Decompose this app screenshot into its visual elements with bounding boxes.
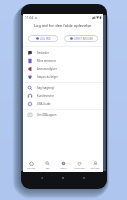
button[interactable]: DBA Guide [23, 100, 103, 108]
staticText: Beskeder [37, 51, 49, 55]
button[interactable]: Søg [39, 159, 55, 172]
button[interactable]: Beskeder [23, 49, 103, 57]
staticText: Log ind for den fulde oplevelse [34, 23, 92, 28]
staticText: DBA Guide [37, 102, 51, 106]
button[interactable]: Favoritter [71, 159, 87, 172]
button[interactable]: OPRET BRUGER [64, 35, 98, 42]
button[interactable]: Min side [87, 159, 103, 172]
button[interactable]: Swipes du følger [23, 73, 103, 81]
button[interactable]: Forside [23, 159, 39, 172]
button[interactable]: Mine annoncer [23, 57, 103, 65]
staticText: Favoritter [74, 167, 85, 170]
staticText: Swipes du følger [37, 75, 58, 79]
staticText: Annonceafgiver [37, 67, 57, 71]
button[interactable]: LOG IND [28, 35, 58, 42]
staticText: Om DBA appen [37, 113, 57, 117]
staticText: Søg (søgning) [37, 86, 55, 90]
button[interactable]: Annonceafgiver [23, 65, 103, 73]
button[interactable]: Kundeservice [23, 92, 103, 100]
button[interactable]: Om DBA appen [23, 111, 103, 119]
button[interactable]: Opret [55, 159, 71, 172]
button[interactable]: Søg (søgning) [23, 84, 103, 92]
staticText: LOG IND [40, 37, 51, 41]
staticText: Opret [60, 167, 67, 170]
staticText: 11:04 [25, 16, 34, 20]
staticText: Søg [45, 167, 50, 170]
staticText: Kundeservice [37, 94, 54, 98]
staticText: OPRET BRUGER [74, 37, 93, 41]
staticText: Forside [27, 167, 35, 170]
staticText: Mine annoncer [37, 59, 57, 63]
staticText: Min side [90, 167, 100, 170]
